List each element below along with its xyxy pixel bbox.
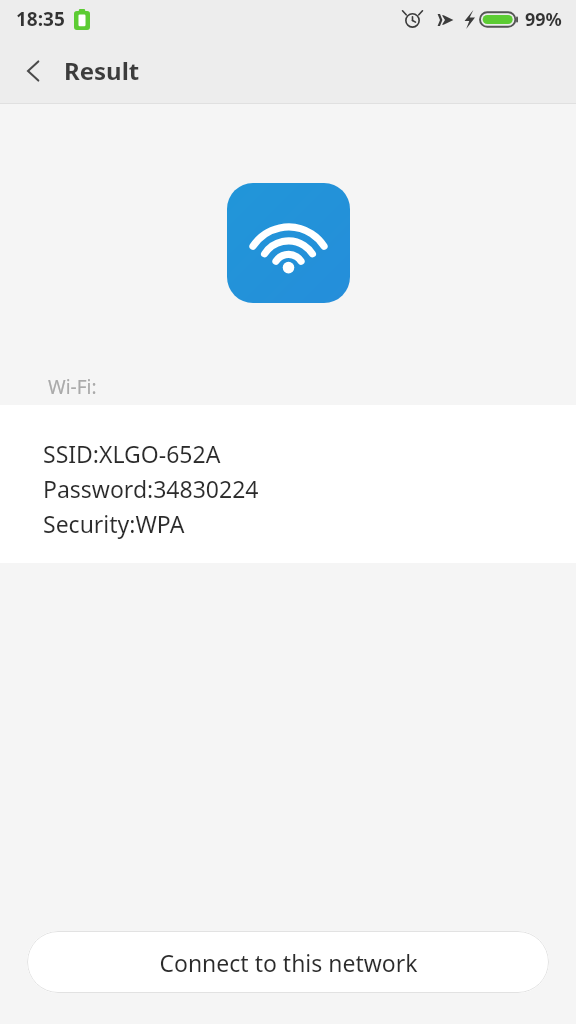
staticText: Result bbox=[64, 54, 140, 87]
button[interactable]: SSID:XLGO-652A bbox=[0, 405, 576, 563]
staticText: SSID:XLGO-652A bbox=[43, 438, 221, 469]
staticText: 18:35 bbox=[16, 6, 65, 32]
button[interactable]: Connect to this network bbox=[27, 931, 549, 993]
staticText: Security:WPA bbox=[43, 508, 185, 539]
staticText: 99% bbox=[525, 7, 562, 32]
staticText: Connect to this network bbox=[159, 947, 418, 978]
other: Wi-Fi bbox=[227, 183, 350, 303]
staticText: Password:34830224 bbox=[43, 473, 259, 504]
staticText: Wi-Fi: bbox=[48, 374, 97, 400]
button[interactable]: Back bbox=[8, 45, 60, 97]
